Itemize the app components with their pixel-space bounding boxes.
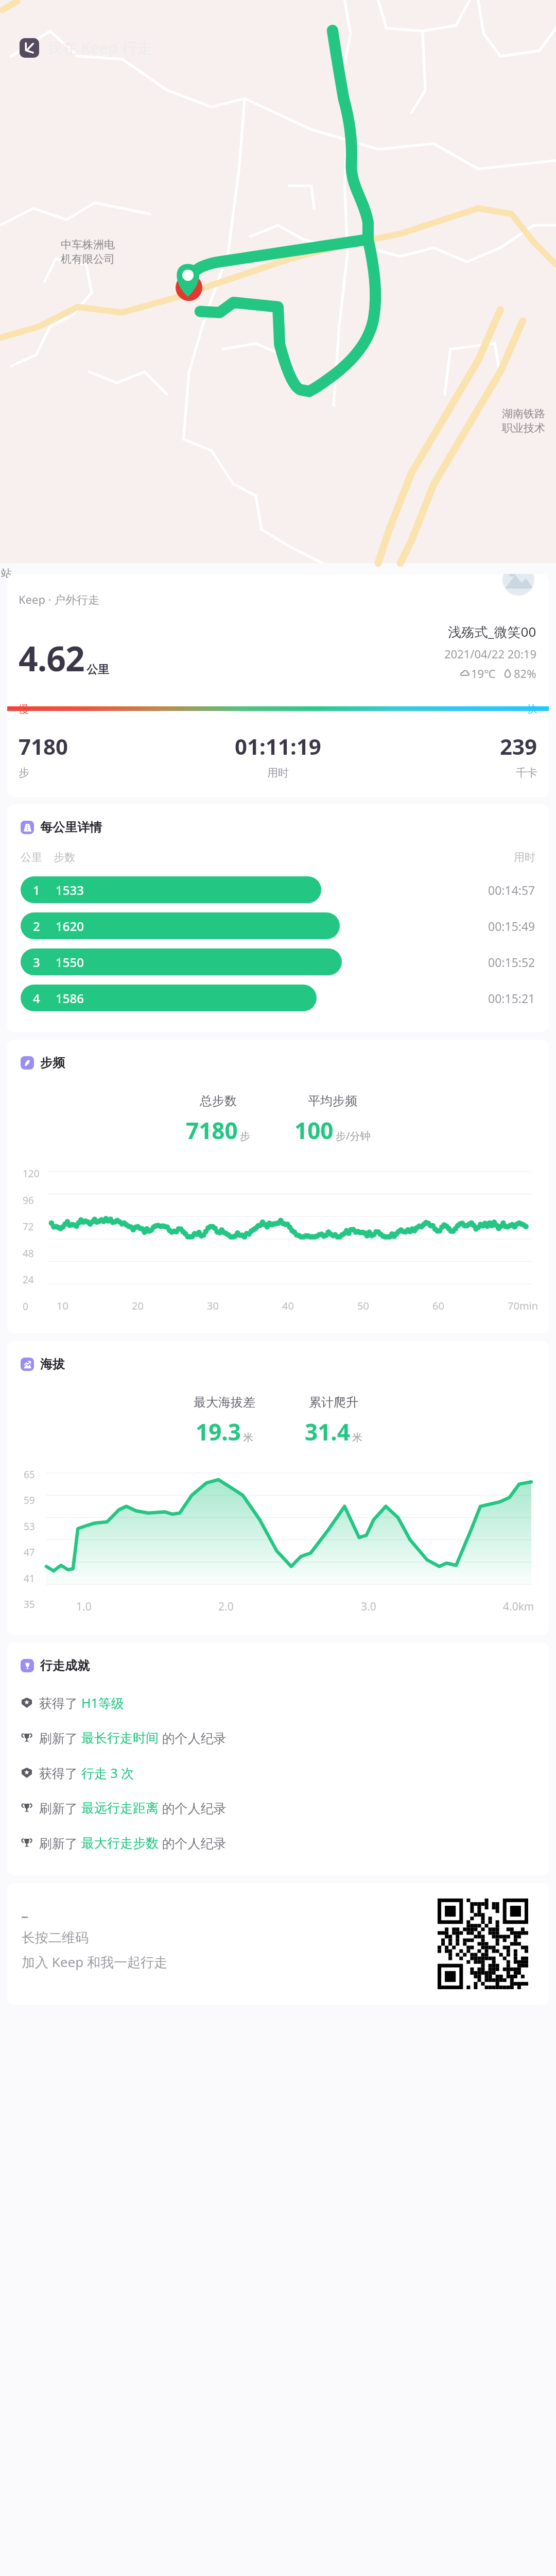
staticText: 米 (352, 1431, 362, 1444)
staticText: 2 (33, 918, 40, 935)
staticText: 01:11:19 (235, 732, 321, 761)
staticText: 10 (57, 1299, 68, 1313)
staticText: 最大海拔差 (194, 1395, 255, 1410)
staticText: 用时 (267, 766, 289, 779)
staticText: 步 (240, 1130, 250, 1143)
staticText: 1550 (56, 954, 84, 971)
staticText: 步频 (40, 1055, 65, 1071)
staticText: 4.62 (19, 635, 84, 681)
staticText: 浅殇式_微笑00 (448, 622, 536, 641)
staticText: 公里 (21, 851, 42, 864)
staticText: 平均步频 (308, 1093, 357, 1109)
staticText: 获得了 (39, 1694, 81, 1711)
staticText: 的个人纪录 (159, 1729, 227, 1747)
staticText: 站 (1, 567, 12, 580)
staticText: 96 (23, 1194, 34, 1207)
staticText: 米 (243, 1431, 253, 1444)
staticText: 总步数 (200, 1093, 237, 1109)
staticText: 获得了 (39, 1764, 81, 1782)
staticText: 60 (432, 1299, 444, 1313)
staticText: 每公里详情 (40, 820, 102, 835)
staticText: 用时 (514, 851, 535, 864)
staticText: 19℃ (471, 666, 496, 681)
staticText: 4 (33, 990, 40, 1007)
staticText: 加入 Keep 和我一起行走 (22, 1953, 167, 1971)
staticText: 公里 (86, 663, 109, 677)
staticText: 70min (508, 1299, 538, 1313)
staticText: 59 (24, 1494, 35, 1507)
staticText: 82% (514, 666, 536, 681)
staticText: 3.0 (361, 1599, 376, 1614)
staticText: 千卡 (516, 766, 537, 779)
staticText: H1等级 (81, 1694, 124, 1711)
staticText: 35 (24, 1598, 35, 1611)
staticText: 3 (33, 954, 40, 971)
staticText: 40 (282, 1299, 294, 1313)
staticText: 刷新了 (39, 1799, 81, 1817)
staticText: 7180 (19, 732, 68, 761)
staticText: 00:15:52 (488, 954, 535, 970)
staticText: 53 (24, 1520, 35, 1533)
staticText: 慢 (19, 703, 29, 714)
staticText: 120 (23, 1167, 40, 1180)
staticText: Keep · 户外行走 (19, 591, 100, 607)
staticText: 步/分钟 (336, 1129, 371, 1143)
staticText: 1620 (56, 918, 84, 935)
staticText: 30 (207, 1299, 219, 1313)
staticText: 65 (24, 1468, 35, 1481)
staticText: 最远行走距离 (81, 1800, 159, 1816)
staticText: 41 (24, 1572, 35, 1585)
staticText: 的个人纪录 (159, 1799, 227, 1817)
staticText: 24 (23, 1273, 34, 1286)
staticText: 19.3 (196, 1416, 241, 1447)
staticText: 00:15:49 (488, 918, 535, 934)
staticText: 00:15:21 (488, 990, 535, 1006)
staticText: 31.4 (305, 1416, 350, 1447)
staticText: 行走成就 (40, 1658, 90, 1673)
staticText: 海拔 (40, 1357, 65, 1372)
staticText: 步 (19, 766, 29, 779)
staticText: 1.0 (76, 1599, 92, 1614)
staticText: 湖南铁路 职业技术 (502, 407, 545, 435)
staticText: 的个人纪录 (159, 1834, 227, 1852)
staticText: 47 (24, 1546, 35, 1559)
staticText: 20 (132, 1299, 144, 1313)
staticText: 239 (500, 732, 537, 761)
staticText: 7180 (186, 1115, 238, 1146)
staticText: 步数 (54, 851, 75, 864)
staticText: 00:14:57 (488, 882, 535, 898)
staticText: 行走 3 次 (81, 1764, 134, 1782)
staticText: 最长行走时间 (81, 1730, 159, 1746)
staticText: 1533 (56, 882, 84, 899)
staticText: 刷新了 (39, 1834, 81, 1852)
staticText: 中车株洲电 机有限公司 (61, 238, 115, 266)
staticText: 最大行走步数 (81, 1835, 159, 1851)
staticText: 刷新了 (39, 1729, 81, 1747)
staticText: 累计爬升 (309, 1395, 358, 1410)
staticText: 50 (357, 1299, 369, 1313)
staticText: 快 (527, 703, 537, 714)
staticText: 4.0km (503, 1599, 534, 1614)
staticText: 0 (23, 1300, 28, 1313)
staticText: 1586 (56, 990, 84, 1007)
staticText: 2.0 (218, 1599, 234, 1614)
staticText: 2021/04/22 20:19 (444, 646, 536, 662)
staticText: 72 (23, 1220, 34, 1233)
staticText: 1 (33, 882, 40, 899)
staticText: 长按二维码 (22, 1929, 89, 1946)
staticText: 48 (23, 1247, 34, 1260)
staticText: 我在 Keep 行走 (46, 37, 153, 58)
staticText: 100 (294, 1115, 334, 1146)
